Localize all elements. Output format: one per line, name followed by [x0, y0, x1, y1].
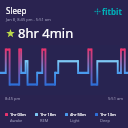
staticText: 5:51 am	[108, 96, 123, 101]
staticText: fitbit	[102, 6, 122, 17]
staticText: 4hr 50m	[70, 112, 86, 117]
button[interactable]: 1hr 13m	[94, 112, 124, 123]
staticText: Awake	[10, 118, 23, 123]
staticText: Deep	[100, 118, 110, 123]
button[interactable]: Sleep stages chart	[0, 45, 128, 95]
button[interactable]: Fitbit	[94, 6, 122, 17]
button[interactable]: 4hr 50m	[64, 112, 94, 123]
staticText: 1hr 13m	[100, 112, 116, 117]
staticText: Light	[70, 118, 80, 123]
staticText: REM	[40, 118, 49, 123]
staticText: Jan 8, 8:45 pm - 5:51 am	[6, 17, 51, 22]
staticText: 1hr 18m	[40, 112, 56, 117]
button[interactable]: 1hr 03m	[4, 112, 34, 123]
button[interactable]: 8hr 4min	[6, 24, 122, 42]
staticText: 1hr 03m	[10, 112, 26, 117]
button[interactable]: 1hr 18m	[34, 112, 64, 123]
staticText: Sleep	[6, 5, 27, 16]
staticText: 8hr 4min	[18, 24, 74, 42]
staticText: 8:45 pm	[5, 96, 21, 101]
